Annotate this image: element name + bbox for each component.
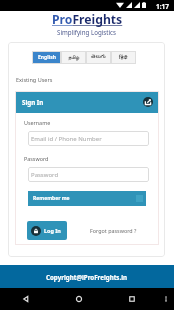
button[interactable]: தமிழ் [61,51,86,64]
button[interactable]: Sign In [15,91,159,113]
staticText: ProFreights [52,11,123,28]
button[interactable]: Home [52,288,105,310]
staticText: Sign In [22,98,44,106]
button[interactable]: Remember me [28,191,146,206]
button[interactable]: Share [143,97,153,107]
staticText: தமிழ் [68,55,80,60]
button[interactable]: Log In [27,221,67,240]
staticText: Password [24,155,49,162]
staticText: తెలుగు [91,54,106,61]
staticText: 1:17 [156,2,169,11]
button[interactable]: Recents [105,288,158,310]
button[interactable]: Menu [158,288,174,310]
button[interactable]: Back [0,288,52,310]
staticText: Password [31,171,59,179]
staticText: Remember me [33,195,70,202]
button[interactable]: Email id / Phone Number [28,131,149,146]
staticText: हिंदी [119,54,128,61]
button[interactable]: English [32,51,61,64]
staticText: English [38,54,56,61]
staticText: Existing Users [16,76,53,83]
staticText: Username [24,119,51,126]
staticText: Simplifying Logistics [57,28,117,36]
button[interactable]: हिंदी [111,51,136,64]
button[interactable]: తెలుగు [86,51,111,64]
staticText: Copyright@iProFreights.in [46,273,128,281]
button[interactable]: Password [28,167,149,182]
button[interactable]: Forgot password ? [90,227,137,234]
staticText: Email id / Phone Number [31,135,102,143]
staticText: Log In [44,227,61,234]
